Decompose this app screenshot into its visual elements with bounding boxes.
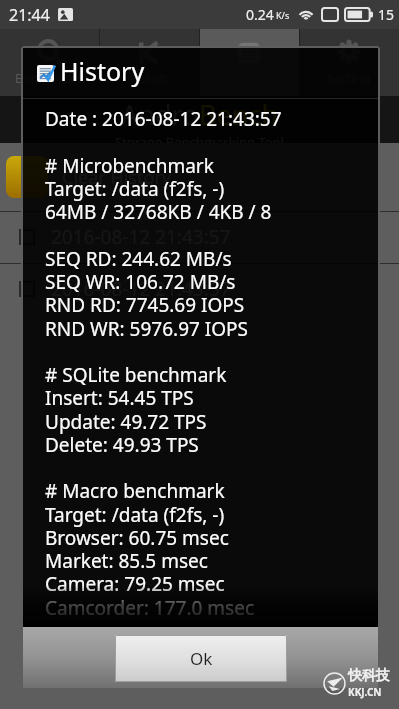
staticText: Clear History: [62, 165, 171, 190]
staticText: 2016-08-12 21:43:57: [51, 224, 231, 250]
staticText: 64MB / 32768KB / 4KB / 8: [45, 199, 272, 225]
staticText: RND RD: 7745.69 IOPS: [45, 292, 245, 318]
staticText: Update: 49.72 TPS: [45, 409, 207, 435]
button[interactable]: Ok: [115, 635, 287, 682]
button[interactable]: Benchmark: [0, 29, 99, 96]
staticText: Browser: 60.75 msec: [45, 525, 229, 551]
staticText: Camera: 79.25 msec: [45, 571, 225, 597]
button[interactable]: Clear history: [6, 156, 48, 198]
staticText: Insert: 54.45 TPS: [45, 385, 194, 411]
staticText: 快科技: [348, 667, 390, 685]
button[interactable]: 2016-08-12 21:43:57: [0, 211, 399, 263]
staticText: SEQ RD: 244.62 MB/s: [45, 246, 232, 272]
staticText: Bench: [199, 96, 279, 133]
staticText: Camcorder: 177.0 msec: [45, 595, 255, 621]
staticText: 2016-08-12 21:43:57: [51, 276, 231, 302]
staticText: Ok: [190, 647, 213, 670]
staticText: 21:44: [9, 4, 50, 26]
staticText: RND WR: 5976.97 IOPS: [45, 316, 249, 342]
staticText: 0.24: [246, 5, 274, 24]
staticText: Storage Benchmarking Tool: [115, 133, 284, 143]
staticText: Delete: 49.93 TPS: [45, 432, 199, 458]
staticText: # SQLite benchmark: [45, 362, 227, 388]
button[interactable]: Setting: [299, 29, 399, 96]
staticText: Market: 85.5 msec: [45, 548, 208, 574]
button[interactable]: 2016-08-12 21:43:57: [0, 263, 399, 315]
staticText: Benchmark: [15, 69, 85, 87]
button[interactable]: History: [199, 29, 299, 96]
staticText: History: [60, 54, 145, 88]
staticText: Andro: [121, 96, 199, 133]
staticText: SEQ WR: 106.72 MB/s: [45, 269, 236, 295]
staticText: K/s: [276, 9, 290, 21]
staticText: Date : 2016-08-12 21:43:57: [45, 106, 282, 132]
button[interactable]: Result: [99, 29, 199, 96]
staticText: # Macro benchmark: [45, 478, 225, 504]
staticText: Result: [130, 69, 168, 87]
staticText: KKJ.CN: [348, 685, 382, 699]
staticText: Target: /data (f2fs, -): [45, 176, 225, 202]
staticText: # Microbenchmark: [45, 153, 214, 179]
staticText: Target: /data (f2fs, -): [45, 502, 225, 528]
staticText: 15: [378, 5, 395, 24]
